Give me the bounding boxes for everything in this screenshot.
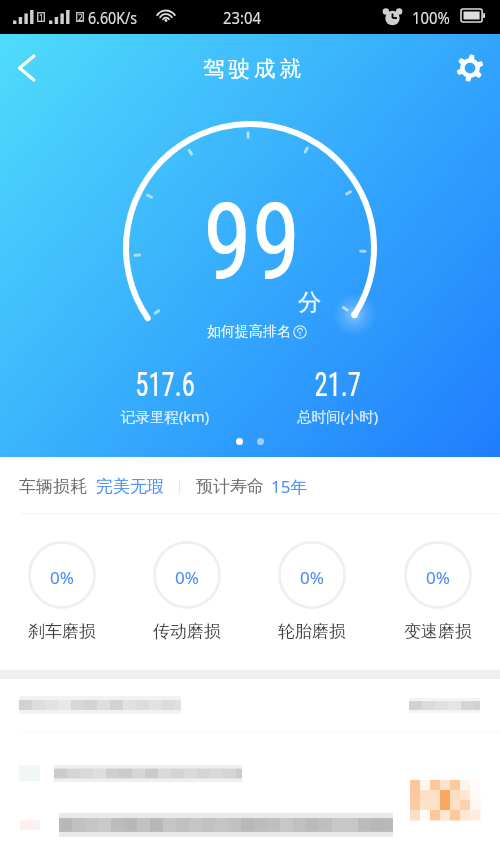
staticText: 21.7 bbox=[315, 364, 361, 404]
staticText: 23:04 bbox=[223, 6, 262, 28]
staticText: 517.6 bbox=[135, 364, 195, 404]
staticText: 99 bbox=[203, 181, 301, 305]
staticText: 预计寿命 bbox=[196, 476, 264, 497]
staticText: 完美无瑕 bbox=[96, 476, 164, 497]
staticText: 0% bbox=[300, 566, 324, 589]
staticText: 0% bbox=[175, 566, 199, 589]
staticText: 驾驶成就 bbox=[201, 55, 303, 82]
staticText: 6.60K/s bbox=[88, 6, 137, 28]
button[interactable]: 0% bbox=[404, 541, 472, 609]
staticText: 轮胎磨损 bbox=[278, 621, 346, 642]
staticText: 如何提高排名 bbox=[207, 323, 291, 341]
staticText: 1 bbox=[39, 12, 44, 22]
staticText: 记录里程(km) bbox=[121, 406, 210, 426]
staticText: 总时间(小时) bbox=[297, 406, 379, 426]
button[interactable]: 0% bbox=[278, 541, 346, 609]
staticText: 刹车磨损 bbox=[28, 621, 96, 642]
staticText: 分 bbox=[298, 288, 321, 317]
staticText: 0% bbox=[426, 566, 450, 589]
staticText: 传动磨损 bbox=[153, 621, 221, 642]
button[interactable]: Back bbox=[2, 44, 50, 92]
button[interactable]: 如何提高排名 bbox=[207, 323, 307, 341]
staticText: 100% bbox=[412, 6, 451, 28]
button[interactable]: 0% bbox=[153, 541, 221, 609]
button[interactable]: Settings bbox=[446, 44, 494, 92]
staticText: 15年 bbox=[271, 475, 308, 498]
staticText: 车辆损耗 bbox=[19, 476, 87, 497]
button[interactable]: 0% bbox=[28, 541, 96, 609]
staticText: 2 bbox=[78, 12, 83, 22]
staticText: 变速磨损 bbox=[404, 621, 472, 642]
staticText: 0% bbox=[50, 566, 74, 589]
